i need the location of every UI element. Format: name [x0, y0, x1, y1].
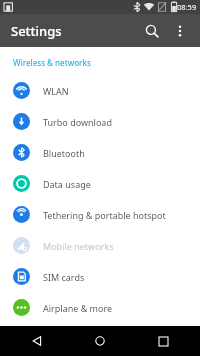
staticText: Tethering & portable hotspot [43, 209, 166, 221]
staticText: Settings [11, 22, 62, 40]
button[interactable]: Search [138, 17, 166, 45]
staticText: Turbo download [43, 116, 112, 128]
staticText: SIM cards [43, 271, 85, 283]
button[interactable]: More options [167, 18, 193, 44]
staticText: WLAN [43, 85, 69, 97]
button[interactable]: Recent apps [150, 328, 176, 354]
staticText: Mobile networks [43, 240, 114, 252]
button[interactable]: Mobile networks [0, 230, 200, 261]
button[interactable]: Bluetooth [0, 137, 200, 168]
button[interactable]: Back [24, 328, 50, 354]
button[interactable]: WLAN [0, 75, 200, 106]
button[interactable]: Home [87, 328, 113, 354]
staticText: Wireless & networks [13, 57, 91, 68]
button[interactable]: Airplane & more [0, 292, 200, 323]
button[interactable]: SIM cards [0, 261, 200, 292]
staticText: Bluetooth [43, 147, 85, 159]
staticText: 08:59 [177, 2, 197, 12]
button[interactable]: Turbo download [0, 106, 200, 137]
button[interactable]: Tethering & portable hotspot [0, 199, 200, 230]
staticText: Data usage [43, 178, 91, 190]
button[interactable]: Data usage [0, 168, 200, 199]
staticText: Airplane & more [43, 302, 113, 314]
